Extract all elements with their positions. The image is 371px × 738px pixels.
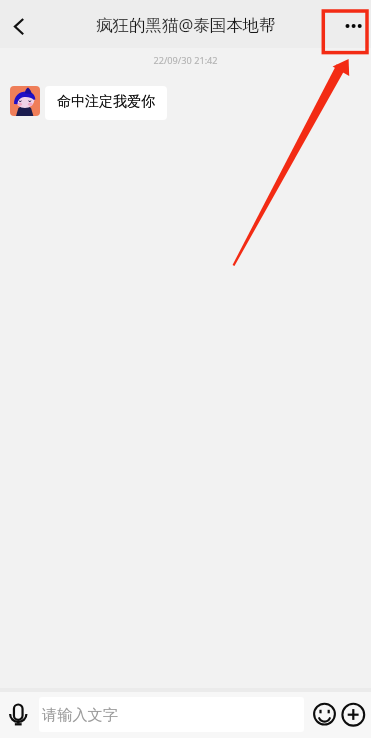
button[interactable]: Voice input bbox=[2, 688, 36, 738]
button[interactable]: More functions bbox=[340, 701, 367, 728]
button[interactable]: Back bbox=[0, 0, 38, 48]
staticText: 请输入文字 bbox=[42, 705, 118, 724]
button[interactable]: Avatar bbox=[10, 86, 40, 116]
button[interactable]: 命中注定我爱你 bbox=[45, 86, 167, 120]
button[interactable]: Emoji bbox=[311, 701, 338, 728]
button[interactable]: 请输入文字 bbox=[39, 697, 304, 732]
staticText: 疯狂的黑猫@泰国本地帮 bbox=[96, 13, 276, 36]
staticText: 命中注定我爱你 bbox=[57, 93, 155, 111]
staticText: 22/09/30 21:42 bbox=[0, 54, 371, 67]
button[interactable]: More options bbox=[325, 0, 371, 48]
staticText: 命中注定我爱你 bbox=[57, 93, 155, 111]
